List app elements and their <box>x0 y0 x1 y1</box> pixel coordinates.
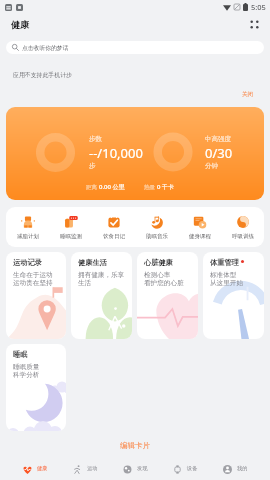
staticText: 分钟 <box>205 162 218 170</box>
button[interactable]: 运动 <box>60 457 110 480</box>
staticText: 我的 <box>237 465 248 472</box>
staticText: 0.00 公里 <box>99 183 125 191</box>
staticText: 5:05 <box>251 2 266 12</box>
staticText: 0 千卡 <box>157 183 174 191</box>
staticText: 生命在于运动 运动贵在坚持 <box>13 271 53 287</box>
staticText: 标准体型 从这里开始 <box>210 271 243 287</box>
staticText: 0/30 <box>205 144 233 162</box>
staticText: 中高强度 <box>205 135 231 143</box>
staticText: 拥有健康，乐享 生活 <box>78 271 125 287</box>
button[interactable]: 运动记录 <box>6 252 66 339</box>
button[interactable]: 睡眠监测 <box>49 207 92 247</box>
staticText: 步数 <box>89 135 102 143</box>
staticText: 距离 <box>86 183 99 191</box>
button[interactable]: 发现 <box>110 457 160 480</box>
button[interactable]: 体重管理 <box>203 252 264 339</box>
button[interactable]: 呼吸训练 <box>221 207 264 247</box>
button[interactable]: 步数 <box>6 107 264 200</box>
button[interactable]: 我的 <box>210 457 260 480</box>
staticText: 发现 <box>137 465 148 472</box>
button[interactable]: 点击收听你的梦话 <box>6 41 264 54</box>
staticText: 健身课程 <box>189 233 211 240</box>
staticText: --/10,000 <box>89 144 143 162</box>
staticText: 运动记录 <box>13 258 42 267</box>
button[interactable]: 健康生活 <box>71 252 132 339</box>
button[interactable]: 健康 <box>10 457 60 480</box>
staticText: 睡眠 <box>13 350 28 359</box>
staticText: 饮食日记 <box>103 233 125 240</box>
staticText: 体重管理 <box>210 258 239 267</box>
button[interactable]: 健身课程 <box>178 207 221 247</box>
staticText: 健康生活 <box>78 258 107 267</box>
button[interactable]: 助眠音乐 <box>135 207 178 247</box>
staticText: 睡眠质量 科学分析 <box>13 363 40 379</box>
staticText: 减脂计划 <box>17 233 39 240</box>
staticText: 心脏健康 <box>144 258 173 267</box>
staticText: 设备 <box>187 465 198 472</box>
staticText: 呼吸训练 <box>232 233 254 240</box>
button[interactable]: 编辑卡片 <box>114 439 156 452</box>
button[interactable]: Mini apps <box>246 16 262 32</box>
staticText: 应用不支持此手机计步 <box>13 71 72 78</box>
staticText: 步 <box>89 162 96 170</box>
button[interactable]: 设备 <box>160 457 210 480</box>
staticText: 健康 <box>37 465 48 472</box>
button[interactable]: 减脂计划 <box>6 207 49 247</box>
staticText: 点击收听你的梦话 <box>22 44 69 51</box>
staticText: 运动 <box>87 465 98 472</box>
button[interactable]: 睡眠 <box>6 344 66 431</box>
staticText: 助眠音乐 <box>146 233 168 240</box>
button[interactable]: 心脏健康 <box>137 252 198 339</box>
staticText: 检测心率 看护您的心脏 <box>144 271 184 287</box>
button[interactable]: 关闭 <box>240 90 256 99</box>
staticText: 热量 <box>144 183 157 191</box>
button[interactable]: 饮食日记 <box>92 207 135 247</box>
staticText: 睡眠监测 <box>60 233 82 240</box>
staticText: 健康 <box>11 19 29 30</box>
